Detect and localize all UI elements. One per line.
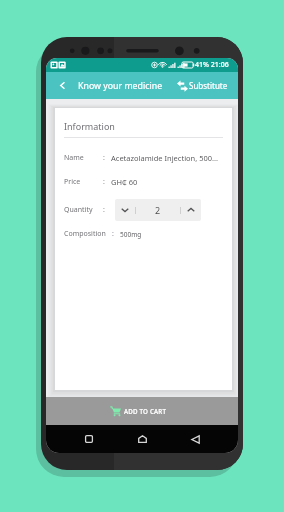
staticText: : — [103, 177, 105, 187]
staticText: 41% 21:06 — [195, 60, 229, 70]
staticText: : — [103, 205, 105, 215]
button[interactable]: Decrease quantity — [115, 199, 135, 221]
staticText: Quantity — [64, 205, 97, 215]
staticText: Composition — [64, 229, 106, 239]
staticText: Name — [64, 153, 97, 163]
button[interactable]: Recents — [76, 425, 102, 453]
button[interactable]: Substitute — [177, 72, 238, 99]
staticText: 2 — [155, 204, 161, 216]
staticText: Substitute — [189, 80, 228, 91]
staticText: ADD TO CART — [124, 407, 167, 415]
staticText: Acetazolamide Injection, 500... — [111, 153, 219, 163]
button[interactable]: Increase quantity — [181, 199, 201, 221]
staticText: Know your medicine — [78, 80, 163, 92]
staticText: Price — [64, 177, 97, 187]
staticText: : — [103, 153, 105, 163]
button[interactable]: Back — [182, 425, 208, 453]
button[interactable]: Home — [129, 425, 155, 453]
staticText: GH₵ 60 — [111, 177, 138, 187]
staticText: : — [112, 229, 114, 239]
button[interactable]: Back — [49, 72, 75, 99]
staticText: Information — [64, 120, 115, 132]
staticText: 500mg — [120, 230, 142, 239]
button[interactable]: ADD TO CART — [46, 397, 238, 425]
